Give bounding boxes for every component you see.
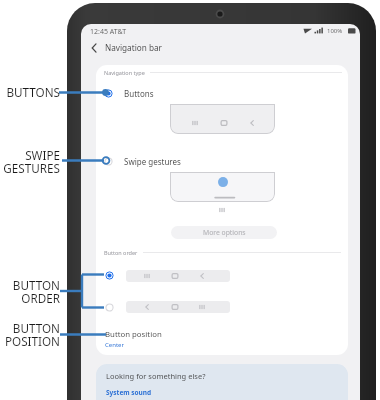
button[interactable]: Swipe gestures	[104, 152, 254, 170]
staticText: Button order	[104, 249, 138, 256]
staticText: SWIPE GESTURES	[0, 147, 60, 176]
staticText: Buttons	[124, 88, 154, 99]
staticText: Navigation type	[104, 69, 145, 76]
button[interactable]: Back	[85, 39, 103, 57]
button[interactable]: Button position	[105, 329, 245, 351]
staticText: Navigation bar	[105, 42, 162, 53]
staticText: BUTTON POSITION	[0, 320, 60, 349]
button[interactable]: Buttons	[104, 84, 254, 102]
button[interactable]	[104, 299, 234, 315]
button[interactable]: Looking for something else?	[96, 364, 348, 400]
staticText: More options	[203, 228, 246, 237]
staticText: Button position	[105, 329, 162, 340]
staticText: 12:45 AT&T	[90, 27, 127, 37]
staticText: System sound	[106, 388, 152, 397]
button[interactable]: More options	[171, 226, 277, 239]
staticText: Swipe gestures	[124, 156, 181, 167]
staticText: Looking for something else?	[106, 371, 206, 381]
staticText: BUTTON ORDER	[0, 277, 60, 306]
staticText: 100%	[327, 27, 343, 35]
staticText: BUTTONS	[0, 84, 60, 100]
staticText: Center	[105, 341, 124, 349]
button[interactable]	[104, 268, 234, 284]
